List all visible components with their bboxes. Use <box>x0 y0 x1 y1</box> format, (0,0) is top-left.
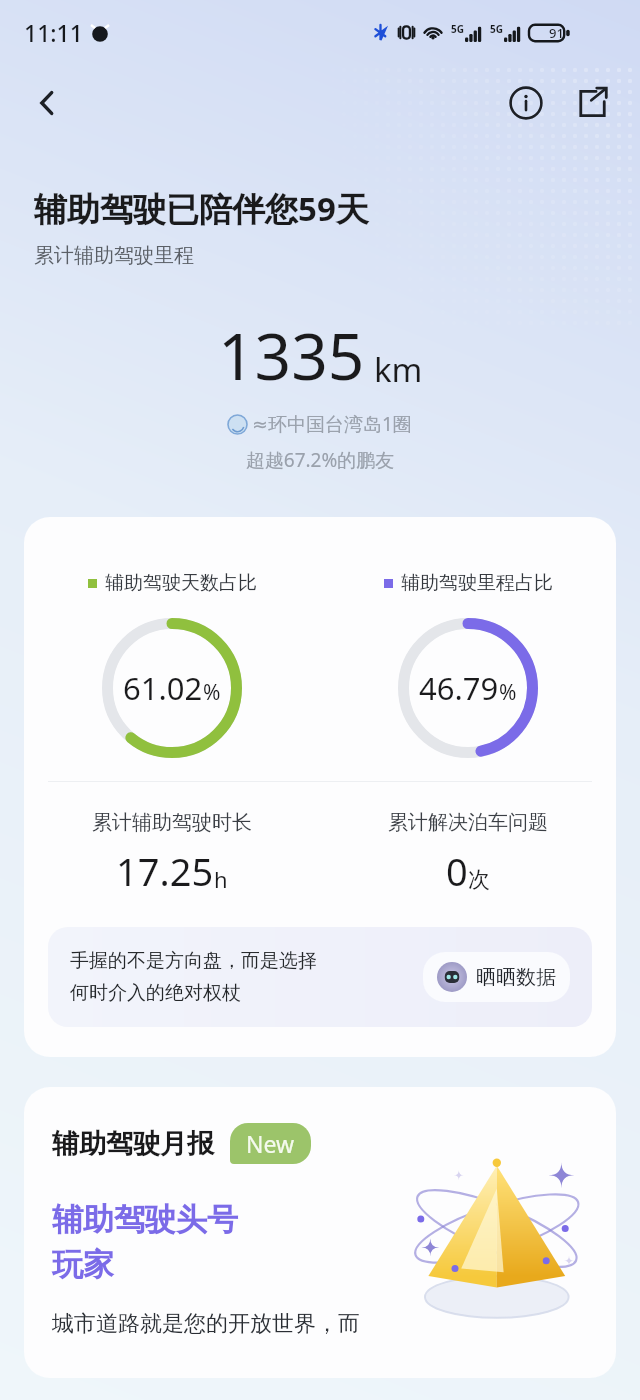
button[interactable]: Info <box>500 77 552 129</box>
staticText: 辅助驾驶已陪伴您59天 <box>34 186 369 231</box>
staticText: % <box>203 678 221 707</box>
staticText: 辅助驾驶里程占比 <box>401 571 553 595</box>
staticText: 何时介入的绝对权杖 <box>70 981 241 1005</box>
staticText: 5G <box>490 22 503 36</box>
staticText: % <box>499 678 517 707</box>
staticText: 61.02 <box>123 667 203 709</box>
staticText: 手握的不是方向盘，而是选择 <box>70 949 317 973</box>
staticText: 城市道路就是您的开放世界，而 <box>52 1310 360 1338</box>
staticText: h <box>214 864 228 894</box>
staticText: 辅助驾驶头号 <box>52 1200 238 1239</box>
button[interactable]: Back <box>18 74 76 132</box>
staticText: 46.79 <box>419 667 499 709</box>
button[interactable]: 辅助驾驶天数占比 <box>24 517 616 1057</box>
button[interactable]: 辅助驾驶月报 <box>24 1087 616 1378</box>
staticText: 辅助驾驶月报 <box>52 1127 214 1161</box>
staticText: 1335 <box>218 312 365 399</box>
staticText: 次 <box>468 866 490 894</box>
button[interactable]: Share <box>566 77 618 129</box>
staticText: New <box>246 1128 295 1159</box>
staticText: 辅助驾驶天数占比 <box>105 571 257 595</box>
staticText: 11:11 <box>24 17 83 48</box>
staticText: 0 <box>446 845 468 897</box>
staticText: 91 <box>549 24 564 42</box>
staticText: 晒晒数据 <box>476 965 556 990</box>
staticText: 累计辅助驾驶里程 <box>34 243 194 268</box>
staticText: 累计解决泊车问题 <box>388 810 548 835</box>
staticText: ≈环中国台湾岛1圈 <box>252 411 412 437</box>
staticText: km <box>374 347 423 392</box>
button[interactable]: 晒晒数据 <box>423 952 570 1002</box>
staticText: 17.25 <box>116 845 214 897</box>
staticText: 超越67.2%的鹏友 <box>0 447 640 473</box>
staticText: 玩家 <box>52 1245 114 1284</box>
staticText: 累计辅助驾驶时长 <box>92 810 252 835</box>
staticText: 5G <box>451 22 464 36</box>
